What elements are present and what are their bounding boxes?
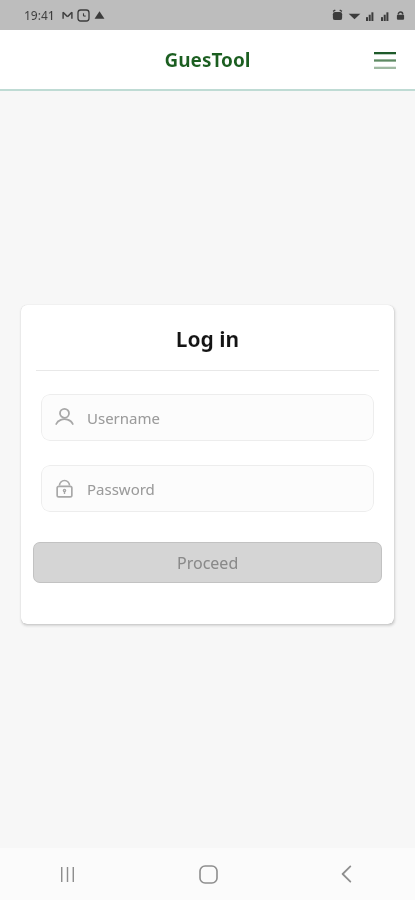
button[interactable]: Recent apps [0, 848, 139, 900]
button[interactable]: Proceed [33, 542, 382, 583]
staticText: Username [87, 408, 160, 428]
staticText: Proceed [177, 552, 239, 574]
button[interactable]: Home [139, 848, 277, 900]
button[interactable]: Open navigation menu [363, 38, 407, 82]
staticText: 19:41 [24, 7, 55, 23]
button[interactable]: Back [277, 848, 415, 900]
staticText: Log in [21, 325, 394, 354]
staticText: Password [87, 479, 155, 499]
staticText: GuesTool [164, 47, 251, 73]
button[interactable]: Password [41, 465, 374, 512]
button[interactable]: Username [41, 394, 374, 441]
